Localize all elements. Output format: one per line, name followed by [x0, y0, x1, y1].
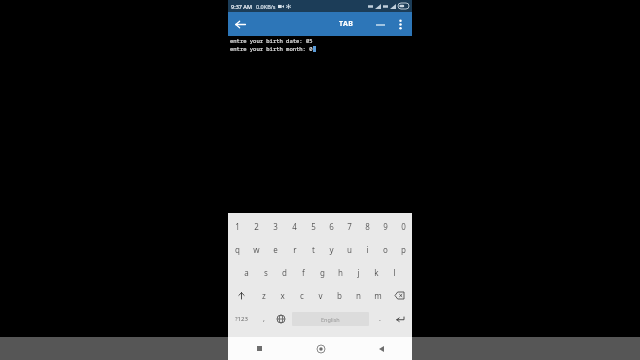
button[interactable]: b: [330, 284, 349, 307]
button[interactable]: n: [349, 284, 368, 307]
staticText: s: [264, 267, 268, 278]
button[interactable]: ?123: [228, 307, 255, 331]
button[interactable]: v: [311, 284, 330, 307]
staticText: z: [262, 290, 266, 301]
staticText: English: [321, 316, 340, 323]
button[interactable]: 1: [228, 215, 247, 238]
button[interactable]: z: [254, 284, 273, 307]
button[interactable]: p: [394, 238, 412, 261]
staticText: r: [293, 244, 297, 255]
staticText: w: [253, 244, 260, 255]
button[interactable]: u: [340, 238, 358, 261]
button[interactable]: Shift: [228, 284, 254, 307]
staticText: d: [282, 267, 287, 278]
button[interactable]: 5: [304, 215, 322, 238]
button[interactable]: f: [294, 261, 313, 284]
staticText: 4: [292, 221, 297, 232]
button[interactable]: w: [247, 238, 266, 261]
staticText: t: [312, 244, 315, 255]
button[interactable]: r: [285, 238, 304, 261]
staticText: 2: [254, 221, 259, 232]
button[interactable]: 0: [394, 215, 412, 238]
button[interactable]: Change language: [272, 307, 290, 331]
staticText: ,: [263, 314, 265, 324]
button[interactable]: 9: [376, 215, 394, 238]
staticText: q: [235, 244, 240, 255]
button[interactable]: e: [266, 238, 285, 261]
button[interactable]: c: [292, 284, 311, 307]
button[interactable]: English: [292, 312, 369, 326]
button[interactable]: j: [349, 261, 367, 284]
button[interactable]: 6: [322, 215, 340, 238]
staticText: b: [337, 290, 342, 301]
button[interactable]: d: [275, 261, 294, 284]
button[interactable]: 2: [247, 215, 266, 238]
staticText: n: [356, 290, 361, 301]
staticText: v: [318, 290, 323, 301]
button[interactable]: 4: [285, 215, 304, 238]
staticText: ?123: [235, 315, 248, 323]
staticText: j: [357, 267, 360, 278]
button[interactable]: Backspace: [387, 284, 412, 307]
button[interactable]: More options: [390, 14, 410, 34]
button[interactable]: g: [313, 261, 331, 284]
staticText: x: [280, 290, 285, 301]
button[interactable]: TAB: [339, 19, 354, 29]
staticText: o: [383, 244, 388, 255]
button[interactable]: ,: [255, 307, 272, 331]
button[interactable]: Home: [290, 337, 351, 360]
button[interactable]: entre your birth date: 05: [228, 36, 412, 213]
button[interactable]: Back: [351, 337, 412, 360]
staticText: 1: [235, 221, 240, 232]
button[interactable]: Enter: [388, 307, 412, 331]
button[interactable]: 7: [340, 215, 358, 238]
button[interactable]: i: [358, 238, 376, 261]
button[interactable]: x: [273, 284, 292, 307]
button[interactable]: s: [256, 261, 275, 284]
staticText: y: [329, 244, 334, 255]
button[interactable]: m: [368, 284, 387, 307]
button[interactable]: h: [331, 261, 349, 284]
staticText: m: [374, 290, 382, 301]
button[interactable]: a: [237, 261, 256, 284]
staticText: h: [338, 267, 343, 278]
button[interactable]: t: [304, 238, 322, 261]
button[interactable]: 8: [358, 215, 376, 238]
staticText: 7: [406, 349, 426, 360]
button[interactable]: 3: [266, 215, 285, 238]
staticText: l: [393, 267, 396, 278]
button[interactable]: Back: [228, 12, 252, 36]
staticText: 5: [311, 221, 316, 232]
staticText: 4: [214, 349, 234, 360]
staticText: i: [366, 244, 369, 255]
button[interactable]: k: [367, 261, 385, 284]
staticText: a: [244, 267, 249, 278]
staticText: 0.0KB/s: [256, 3, 276, 10]
staticText: 3: [273, 221, 278, 232]
button[interactable]: y: [322, 238, 340, 261]
staticText: p: [401, 244, 406, 255]
button[interactable]: Recents: [228, 337, 290, 360]
staticText: entre your birth date: 05: [230, 37, 313, 44]
staticText: 9: [383, 221, 388, 232]
button[interactable]: Minimize: [370, 14, 390, 34]
button[interactable]: l: [385, 261, 403, 284]
button[interactable]: q: [228, 238, 247, 261]
button[interactable]: .: [371, 307, 388, 331]
staticText: .: [379, 314, 381, 324]
staticText: u: [347, 244, 352, 255]
staticText: entre your birth month: 0: [230, 45, 313, 52]
staticText: 0: [401, 221, 406, 232]
staticText: 9:37 AM: [231, 3, 253, 10]
staticText: c: [300, 290, 304, 301]
staticText: 8: [365, 221, 370, 232]
button[interactable]: o: [376, 238, 394, 261]
staticText: k: [374, 267, 379, 278]
